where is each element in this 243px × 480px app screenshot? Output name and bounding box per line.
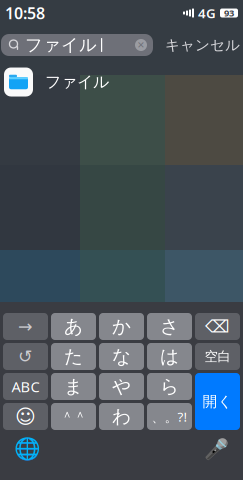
button[interactable]: な: [99, 343, 144, 370]
staticText: 10:58: [5, 2, 45, 24]
staticText: ✕: [137, 40, 145, 50]
button[interactable]: ⌫: [195, 313, 240, 340]
button[interactable]: 、。?!: [147, 403, 192, 430]
button[interactable]: ☺: [3, 403, 48, 430]
button[interactable]: ABC: [3, 373, 48, 400]
button[interactable]: Dictation: [199, 432, 233, 466]
button[interactable]: Switch keyboard: [10, 432, 44, 466]
staticText: な: [112, 345, 131, 368]
button[interactable]: ら: [147, 373, 192, 400]
button[interactable]: あ: [51, 313, 96, 340]
staticText: 🌐: [13, 437, 40, 461]
staticText: わ: [112, 405, 131, 428]
button[interactable]: 空白: [195, 343, 240, 370]
staticText: ⌫: [205, 317, 230, 336]
button[interactable]: は: [147, 343, 192, 370]
button[interactable]: わ: [99, 403, 144, 430]
button[interactable]: た: [51, 343, 96, 370]
button[interactable]: か: [99, 313, 144, 340]
staticText: ファイル: [25, 34, 97, 56]
staticText: ↺: [18, 347, 33, 366]
button[interactable]: ま: [51, 373, 96, 400]
staticText: 、。?!: [151, 408, 187, 425]
staticText: さ: [160, 315, 179, 338]
button[interactable]: →: [3, 313, 48, 340]
staticText: た: [64, 345, 83, 368]
staticText: ら: [160, 375, 179, 398]
staticText: は: [160, 345, 179, 368]
staticText: や: [112, 375, 131, 398]
staticText: ま: [64, 375, 83, 398]
button[interactable]: ファイル: [0, 64, 243, 100]
button[interactable]: や: [99, 373, 144, 400]
button[interactable]: ファイル: [1, 34, 153, 56]
staticText: ファイル: [45, 72, 109, 92]
staticText: 93: [224, 7, 234, 19]
button[interactable]: さ: [147, 313, 192, 340]
button[interactable]: ↺: [3, 343, 48, 370]
staticText: 🎤: [203, 438, 228, 460]
button[interactable]: キャンセル: [159, 34, 243, 56]
staticText: ABC: [11, 377, 39, 396]
staticText: 空白: [204, 348, 230, 365]
staticText: →: [18, 317, 33, 336]
staticText: あ: [64, 315, 83, 338]
button[interactable]: ＾＾: [51, 403, 96, 430]
staticText: ＾＾: [60, 408, 86, 425]
staticText: 4G: [198, 4, 216, 22]
staticText: ☺: [15, 405, 36, 428]
button[interactable]: 開く: [195, 373, 240, 430]
staticText: 開く: [202, 392, 232, 410]
staticText: か: [112, 315, 131, 338]
staticText: キャンセル: [165, 36, 240, 54]
